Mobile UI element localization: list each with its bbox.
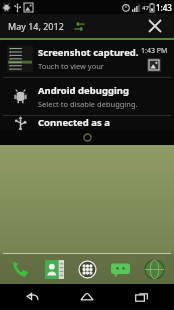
staticText: 1:43 PM	[141, 46, 168, 56]
button[interactable]: Calculator	[48, 12, 86, 46]
button[interactable]: Clear all notifications	[144, 15, 166, 37]
button[interactable]: Phone	[7, 256, 33, 282]
button[interactable]: Contacts	[41, 256, 67, 282]
staticText: 1:43	[156, 2, 172, 13]
button[interactable]: Toggle	[133, 56, 163, 96]
button[interactable]: Toggle	[102, 56, 132, 96]
button[interactable]: Apps	[74, 256, 100, 282]
staticText: Select to disable debugging.	[38, 99, 138, 109]
staticText: Screenshot captured.	[38, 46, 139, 59]
staticText: Android debugging enabled	[38, 84, 139, 97]
button[interactable]: Toggle	[71, 56, 101, 96]
button[interactable]: Back	[11, 284, 55, 310]
button[interactable]: Home	[65, 284, 109, 310]
button[interactable]: Browser	[141, 256, 167, 282]
staticText: Touch to view your screenshot.	[38, 61, 139, 71]
button[interactable]: Email	[129, 12, 167, 46]
staticText: 47	[142, 4, 149, 12]
button[interactable]: Phone	[7, 12, 45, 46]
button[interactable]: Toggle	[41, 56, 70, 96]
button[interactable]: Settings	[70, 17, 88, 35]
button[interactable]: Android debugging enabled	[0, 78, 174, 115]
staticText: May 14, 2012	[8, 20, 64, 32]
staticText: Settings	[95, 36, 120, 45]
button[interactable]: Settings	[88, 12, 126, 46]
button[interactable]: Toggle	[11, 56, 40, 96]
staticText: Email	[140, 36, 157, 45]
button[interactable]: Screenshot captured.	[0, 40, 174, 77]
button[interactable]: Recents	[120, 284, 164, 310]
button[interactable]: Messaging	[107, 256, 133, 282]
button[interactable]: Connected as a media device	[0, 116, 174, 130]
staticText: Phone	[16, 36, 36, 45]
staticText: Calculator	[52, 36, 83, 45]
staticText: Connected as a media device	[38, 116, 139, 129]
